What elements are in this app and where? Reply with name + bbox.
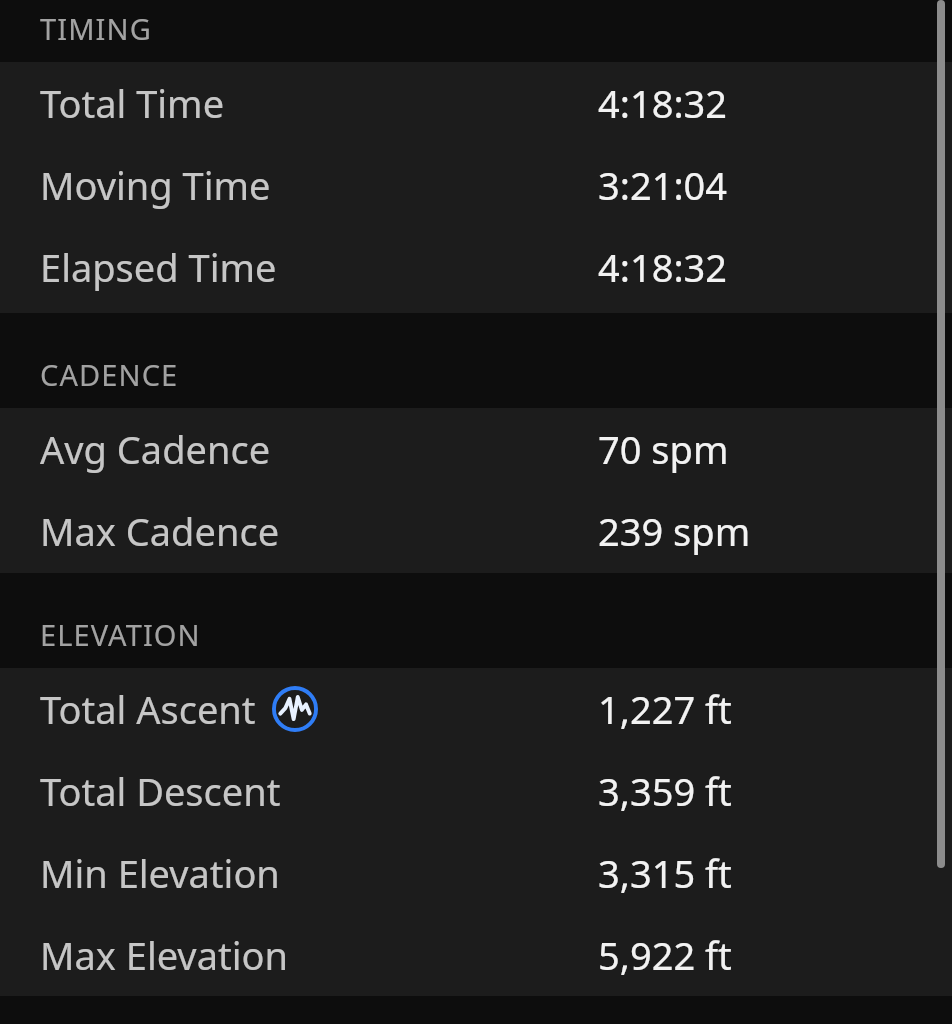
button[interactable]: Min Elevation	[0, 832, 952, 914]
staticText: 3,359 ft	[598, 765, 732, 817]
staticText: Moving Time	[40, 159, 271, 211]
staticText: Max Elevation	[40, 929, 288, 981]
staticText: Total Ascent	[40, 683, 256, 735]
button[interactable]: Total Ascent	[0, 668, 952, 750]
button[interactable]: Elapsed Time	[0, 226, 952, 308]
staticText: 3,315 ft	[598, 847, 732, 899]
staticText: ELEVATION	[40, 615, 201, 654]
button[interactable]: Avg Cadence	[0, 408, 952, 490]
other: Activity elevation info	[272, 686, 318, 732]
button[interactable]: Total Time	[0, 62, 952, 144]
button[interactable]: Total Descent	[0, 750, 952, 832]
staticText: CADENCE	[40, 355, 179, 394]
staticText: Total Descent	[40, 765, 281, 817]
staticText: 70 spm	[598, 423, 729, 475]
staticText: Total Time	[40, 77, 225, 129]
button[interactable]: Moving Time	[0, 144, 952, 226]
staticText: TIMING	[40, 9, 152, 48]
staticText: 4:18:32	[598, 77, 728, 129]
staticText: 4:18:32	[598, 241, 728, 293]
button[interactable]: Max Elevation	[0, 914, 952, 996]
staticText: Avg Cadence	[40, 423, 271, 475]
staticText: 5,922 ft	[598, 929, 732, 981]
staticText: Elapsed Time	[40, 241, 277, 293]
staticText: 1,227 ft	[598, 683, 732, 735]
staticText: Min Elevation	[40, 847, 280, 899]
staticText: 3:21:04	[598, 159, 728, 211]
button[interactable]: Max Cadence	[0, 490, 952, 572]
staticText: Max Cadence	[40, 505, 280, 557]
staticText: 239 spm	[598, 505, 751, 557]
